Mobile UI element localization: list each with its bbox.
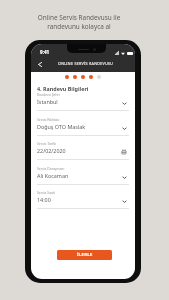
staticText: ONLINE SERVİS RANDEVUSU xyxy=(58,61,114,66)
button[interactable]: Servis Noktası xyxy=(31,116,135,140)
staticText: Servis Saati xyxy=(37,190,56,195)
staticText: Servis Danışmanı xyxy=(37,166,65,171)
staticText: Randevu Şehri xyxy=(37,92,60,97)
button[interactable]: Randevu Şehri xyxy=(31,91,135,115)
staticText: İstanbul xyxy=(37,98,58,105)
staticText: 22/02/2020 xyxy=(37,147,66,154)
staticText: Servis Noktası xyxy=(37,117,60,122)
staticText: Doğuş OTO Maslak xyxy=(37,123,86,130)
button[interactable]: Servis Tarihi xyxy=(31,140,135,164)
button[interactable]: Servis Saati xyxy=(31,189,135,213)
staticText: Servis Tarihi xyxy=(37,141,57,146)
button[interactable]: İLERLE xyxy=(57,250,112,260)
button[interactable]: Servis Danışmanı xyxy=(31,165,135,189)
staticText: İLERLE xyxy=(77,252,93,258)
staticText: Ali Kocaman xyxy=(37,172,69,179)
staticText: 4. Randevu Bilgileri xyxy=(37,85,89,92)
staticText: Online Servis Randevusu ile randevunu ko… xyxy=(14,13,144,31)
staticText: 9:41 xyxy=(40,49,50,55)
staticText: 14:00 xyxy=(37,196,51,203)
button[interactable]: Back xyxy=(35,60,44,69)
